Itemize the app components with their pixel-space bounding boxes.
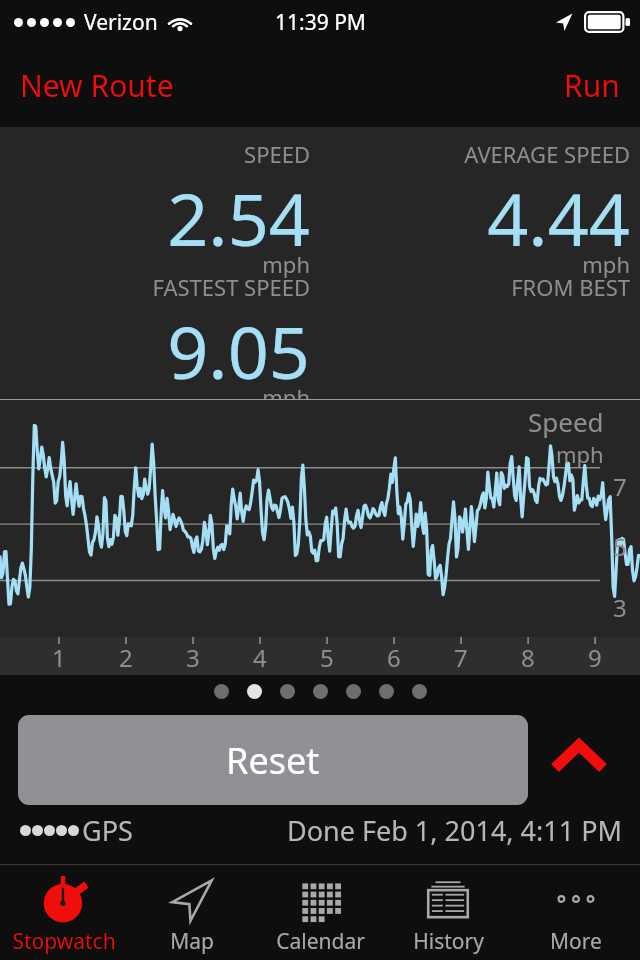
button[interactable]: New Route	[0, 57, 186, 114]
staticText: Verizon	[84, 8, 158, 37]
staticText: 7	[454, 641, 468, 674]
staticText: 4.44	[318, 169, 630, 249]
button[interactable]: Calendar	[256, 865, 384, 960]
staticText: Speed	[528, 404, 604, 439]
staticText: History	[413, 927, 484, 956]
button[interactable]: Map	[128, 865, 256, 960]
staticText: 7	[613, 470, 627, 503]
staticText: Run	[564, 65, 620, 106]
button[interactable]: Reset	[18, 715, 528, 805]
button[interactable]: Stopwatch	[0, 865, 128, 960]
staticText: mph	[318, 249, 630, 279]
staticText: New Route	[20, 65, 174, 106]
staticText: SPEED	[0, 139, 310, 169]
staticText: mph	[556, 439, 604, 469]
staticText: GPS	[82, 812, 133, 849]
button[interactable]: More	[512, 865, 640, 960]
button[interactable]: History	[384, 865, 512, 960]
staticText: mph	[0, 382, 310, 412]
staticText: Stopwatch	[12, 927, 116, 956]
staticText: 11:39 PM	[275, 8, 366, 37]
staticText: AVERAGE SPEED	[318, 139, 630, 169]
button[interactable]: Run	[552, 57, 640, 114]
staticText: mph	[0, 249, 310, 279]
staticText: 2	[119, 641, 133, 674]
staticText: Calendar	[276, 927, 365, 956]
staticText: FASTEST SPEED	[0, 272, 310, 302]
staticText: FROM BEST	[318, 272, 630, 302]
button[interactable]: Expand	[544, 721, 614, 791]
staticText: 9	[588, 641, 602, 674]
staticText: Reset	[226, 736, 320, 785]
staticText: 5	[613, 530, 627, 563]
staticText: 2.54	[0, 169, 310, 249]
staticText: 9.05	[0, 302, 310, 382]
staticText: Map	[170, 927, 214, 956]
staticText: 4	[253, 641, 267, 674]
staticText: 6	[387, 641, 401, 674]
staticText: 3	[613, 591, 627, 624]
staticText: 5	[320, 641, 334, 674]
staticText: Done Feb 1, 2014, 4:11 PM	[287, 812, 622, 849]
staticText: 3	[186, 641, 200, 674]
staticText: 1	[52, 641, 66, 674]
staticText: More	[550, 927, 602, 956]
staticText: 8	[521, 641, 535, 674]
